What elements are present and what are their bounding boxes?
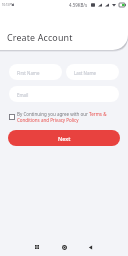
staticText: 4.59KB/s bbox=[69, 2, 88, 8]
button[interactable]: Email bbox=[9, 86, 119, 102]
button[interactable]: Last Name bbox=[66, 64, 119, 80]
button[interactable]: Next bbox=[8, 130, 120, 146]
button[interactable]: Recent apps bbox=[31, 241, 43, 253]
staticText: Next bbox=[58, 135, 71, 142]
button[interactable]: Back bbox=[84, 241, 96, 253]
button[interactable]: Home bbox=[58, 241, 70, 253]
staticText: Create Account bbox=[7, 31, 73, 43]
staticText: Email bbox=[17, 92, 29, 98]
button[interactable]: First Name bbox=[9, 64, 62, 80]
button[interactable]: Agree to Terms and Conditions bbox=[9, 114, 15, 120]
staticText: 10:13 PM bbox=[2, 3, 14, 7]
staticText: First Name bbox=[17, 70, 40, 76]
staticText: Last Name bbox=[74, 70, 96, 76]
button[interactable]: By Continuing you agree with our Terms &… bbox=[17, 111, 124, 123]
